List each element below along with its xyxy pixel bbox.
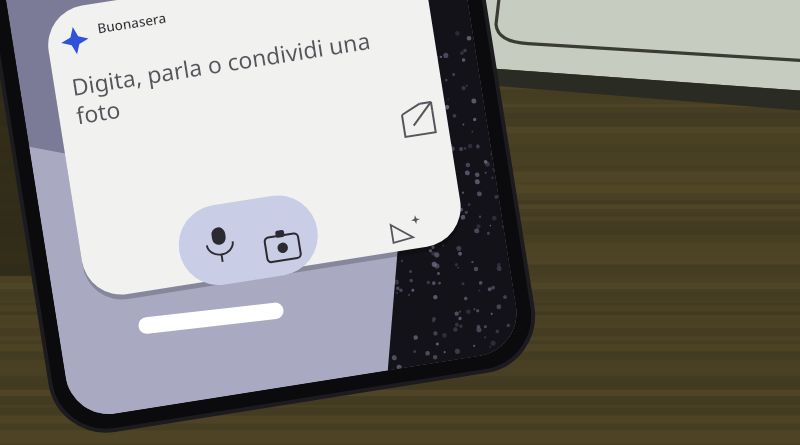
button[interactable]: Voice input [182, 276, 306, 338]
button[interactable]: Digita, parla o condividi una foto [96, 84, 424, 275]
button[interactable]: Send [329, 337, 381, 377]
button[interactable]: Camera [236, 291, 290, 337]
button[interactable]: Expand [366, 183, 418, 225]
